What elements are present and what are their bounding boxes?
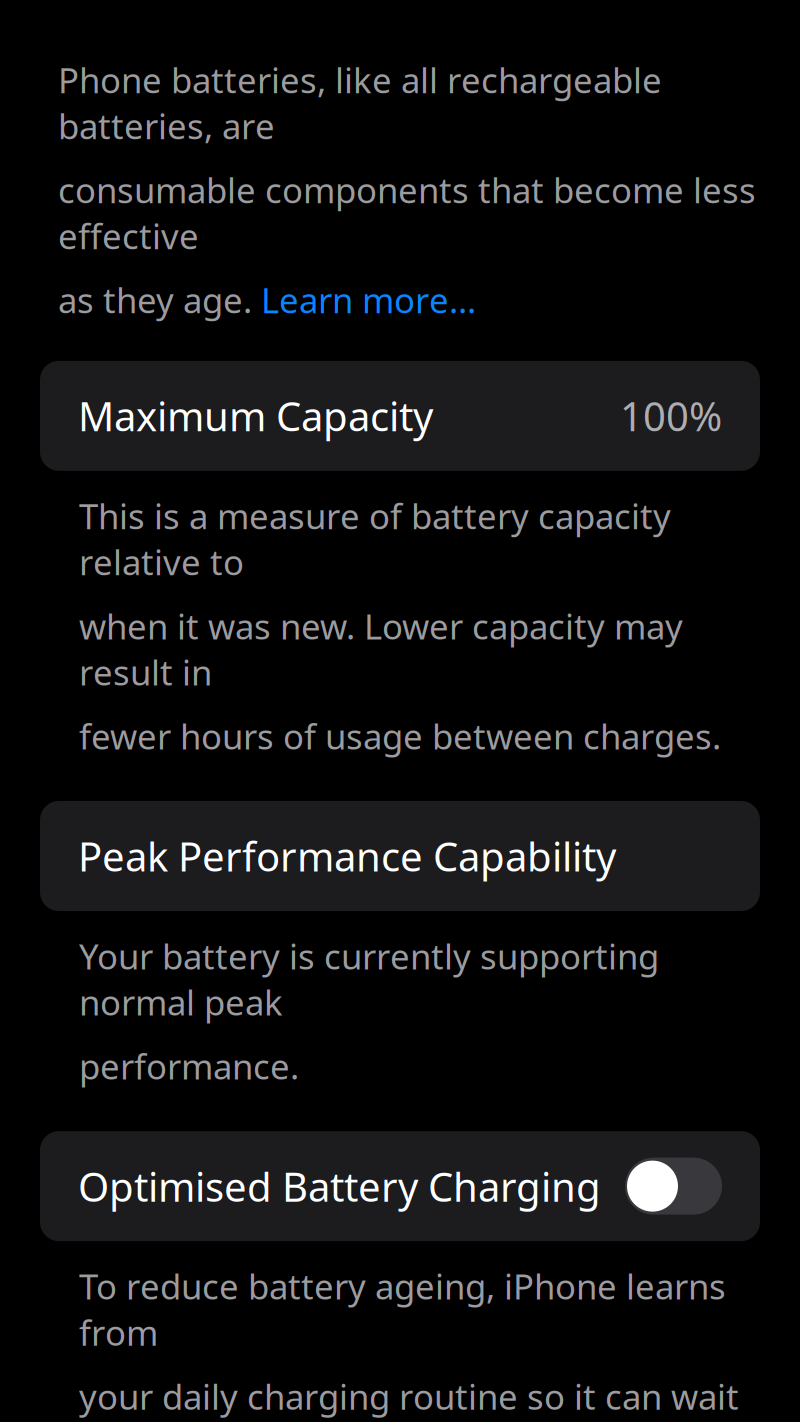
staticText: fewer hours of usage between charges. (79, 713, 721, 759)
staticText: your daily charging routine so it can wa… (79, 1373, 739, 1422)
staticText: Learn more... (261, 277, 476, 323)
staticText: This is a measure of battery capacity re… (79, 493, 671, 585)
staticText: 100% (620, 389, 722, 442)
button[interactable]: Optimised Battery Charging (40, 1131, 760, 1241)
staticText: consumable components that become less e… (58, 167, 756, 259)
button[interactable]: Maximum Capacity (40, 361, 760, 471)
button[interactable]: Learn more... (261, 277, 476, 323)
staticText: Phone batteries, like all rechargeable b… (58, 57, 662, 149)
staticText: performance. (79, 1043, 299, 1089)
button[interactable]: Peak Performance Capability (40, 801, 760, 911)
staticText: when it was new. Lower capacity may resu… (79, 603, 683, 695)
staticText: as they age. (58, 277, 261, 323)
staticText: To reduce battery ageing, iPhone learns … (79, 1263, 726, 1355)
staticText: Optimised Battery Charging (78, 1160, 601, 1213)
staticText: Peak Performance Capability (78, 829, 616, 883)
staticText: Maximum Capacity (78, 389, 433, 442)
staticText: Your battery is currently supporting nor… (79, 933, 659, 1025)
